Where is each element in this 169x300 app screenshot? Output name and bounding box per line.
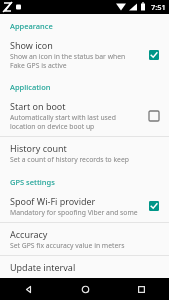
button[interactable]: Checked <box>145 46 163 64</box>
button[interactable]: Show icon <box>0 34 169 75</box>
button[interactable]: Back <box>0 278 57 300</box>
staticText: Spoof Wi-Fi provider <box>10 195 96 207</box>
staticText: Mandatory for spoofing Viber and some ot… <box>10 208 139 217</box>
staticText: Show an icon in the status bar when Fake… <box>10 52 139 70</box>
button[interactable]: Home <box>57 278 113 300</box>
button[interactable]: History count <box>0 137 169 169</box>
staticText: Set GPS fix accuracy value in meters <box>10 241 125 250</box>
button[interactable]: Checked <box>145 197 163 215</box>
staticText: Appearance <box>10 21 53 31</box>
staticText: Start on boot <box>10 100 66 112</box>
button[interactable]: Start on boot <box>0 95 169 136</box>
button[interactable]: Accuracy <box>0 223 169 255</box>
staticText: History count <box>10 142 67 154</box>
staticText: Application <box>10 82 51 92</box>
staticText: Automatically start with last used locat… <box>10 113 139 131</box>
staticText: Set a count of history records to keep <box>10 155 129 164</box>
staticText: Show icon <box>10 39 53 51</box>
button[interactable]: Spoof Wi-Fi provider <box>0 190 169 222</box>
button[interactable]: Update interval <box>0 256 169 278</box>
staticText: Accuracy <box>10 228 48 240</box>
staticText: 7:51 <box>151 2 166 12</box>
button[interactable]: Unchecked <box>145 107 163 125</box>
staticText: GPS settings <box>10 177 55 187</box>
staticText: Update interval <box>10 261 76 273</box>
button[interactable]: Recent apps <box>113 278 169 300</box>
